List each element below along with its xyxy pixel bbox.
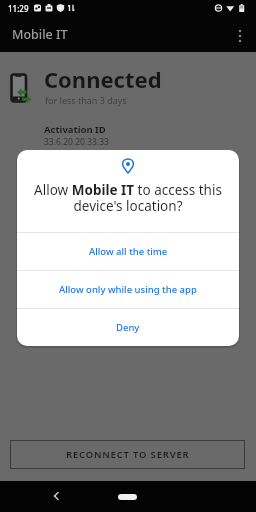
staticText: 11:29 [8,3,29,14]
staticText: Deny [116,321,140,334]
staticText: Allow Mobile IT to access this device's … [17,181,239,215]
button[interactable]: Deny [17,309,239,346]
staticText: Allow all the time [89,245,168,258]
button[interactable] [232,25,248,49]
staticText: RECONNECT TO SERVER [66,448,190,461]
staticText: Mobile IT [12,26,68,43]
button[interactable]: Allow all the time [17,233,239,270]
staticText: 33.6.20.20.33.33 [44,136,109,148]
button[interactable]: RECONNECT TO SERVER [10,440,245,469]
staticText: Allow only while using the app [59,283,197,296]
button[interactable]: Allow only while using the app [17,271,239,308]
button[interactable] [46,486,66,506]
staticText: Connected [44,64,162,94]
staticText: Activation ID [44,123,106,136]
button[interactable] [118,494,137,500]
staticText: for less than 3 days [45,94,127,106]
